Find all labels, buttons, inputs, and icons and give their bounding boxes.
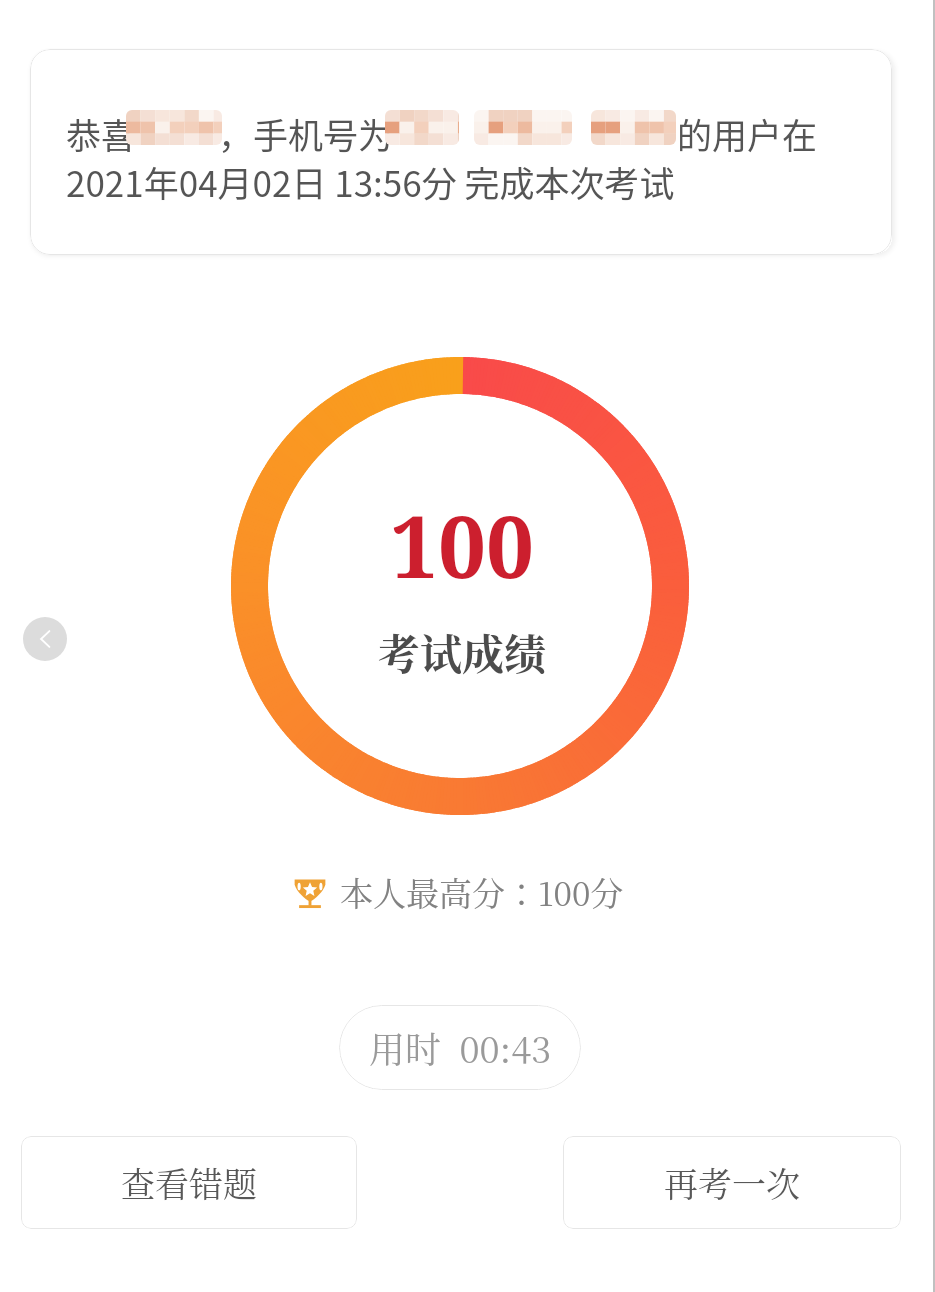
staticText: ，手机号为 [218,108,394,159]
staticText: 查看错题 [121,1158,257,1207]
button[interactable]: 再考一次 [563,1136,901,1229]
staticText: 100 [390,487,535,603]
button[interactable]: Back [23,617,67,661]
button[interactable]: 用时 00:43 [339,1005,581,1090]
staticText: 本人最高分：100分 [340,868,624,915]
staticText: 恭喜 [66,108,137,159]
staticText: 的用户在 [677,108,818,159]
staticText: 2021年04月02日 13:56分 完成本次考试 [66,156,675,207]
button[interactable]: 查看错题 [21,1136,357,1229]
staticText: 考试成绩 [378,622,547,682]
staticText: 用时 00:43 [369,1022,552,1074]
staticText: 再考一次 [664,1158,800,1207]
